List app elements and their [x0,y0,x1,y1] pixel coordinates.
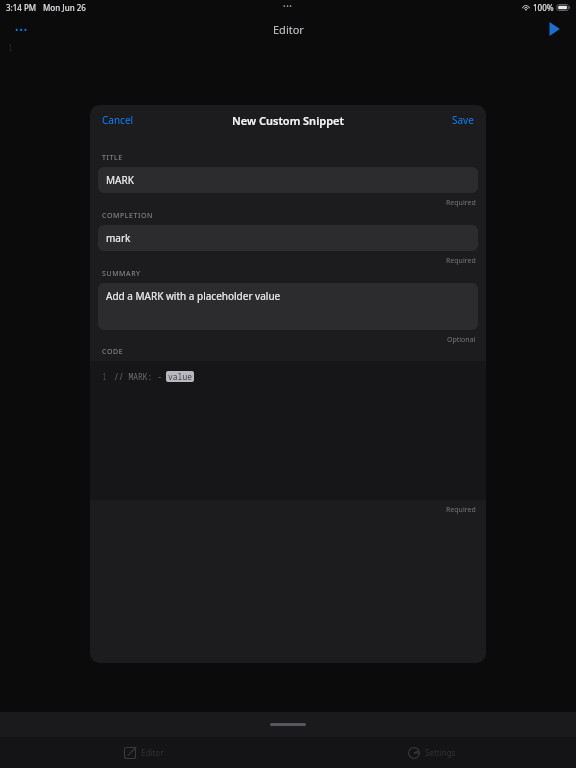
staticText: New Custom Snippet [232,113,344,128]
button[interactable]: mark [98,225,478,251]
staticText: CODE [102,347,124,357]
button[interactable]: Editor [0,737,288,768]
staticText: SUMMARY [102,269,141,279]
staticText: Editor [141,747,164,758]
staticText: 100% [533,2,554,13]
staticText: Required [446,256,476,266]
button[interactable]: More options [8,15,36,43]
staticText: Required [446,505,476,515]
staticText: Add a MARK with a placeholder value [106,289,281,303]
staticText: ••• [15,23,29,35]
staticText: mark [106,231,131,245]
staticText: Required [446,198,476,208]
button[interactable]: 1 [90,361,486,500]
staticText: value [168,371,192,382]
staticText: COMPLETION [102,211,153,221]
staticText: // MARK: - [114,371,162,382]
staticText: Save [452,113,474,127]
staticText: 1 [8,42,13,53]
button[interactable]: MARK [98,167,478,193]
staticText: TITLE [102,153,123,163]
staticText: 1 [102,371,107,382]
staticText: MARK [106,173,134,187]
staticText: Optional [447,335,476,345]
button[interactable]: Add a MARK with a placeholder value [98,283,478,330]
button[interactable]: Save [446,109,480,131]
staticText: Editor [273,22,304,37]
button[interactable]: Cancel [96,109,140,131]
staticText: 3:14 PM [6,2,37,13]
button[interactable]: Run [540,15,568,43]
staticText: Cancel [102,113,134,127]
staticText: Settings [425,747,456,758]
staticText: ••• [283,2,293,12]
staticText: Mon Jun 26 [43,2,86,13]
